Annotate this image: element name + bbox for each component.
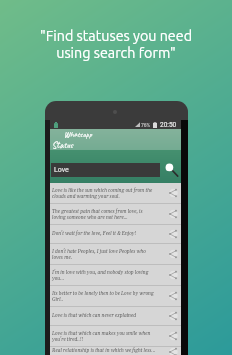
staticText: Whatsapp: [64, 129, 92, 139]
button[interactable]: Share: [168, 229, 178, 239]
button[interactable]: Share: [168, 311, 178, 321]
button[interactable]: I don't hate Peoples, I just love People…: [50, 244, 181, 264]
staticText: I don't hate Peoples, I just love People…: [52, 249, 156, 260]
staticText: I'm in love with you, and nobody stop lo…: [52, 270, 156, 281]
button[interactable]: Share: [168, 331, 178, 341]
staticText: Love is that which can never explained: [52, 313, 156, 319]
staticText: "Find statuses you need using search for…: [40, 28, 192, 61]
button[interactable]: Don't wait for the love, Feel it & Enjoy…: [50, 225, 181, 243]
button[interactable]: Share: [168, 291, 178, 301]
staticText: Love is that which can makes you smile w…: [52, 331, 156, 342]
button[interactable]: The greatest pain that comes from love, …: [50, 204, 181, 224]
button[interactable]: Love is that which can never explained: [50, 307, 181, 325]
staticText: The greatest pain that comes from love, …: [52, 209, 156, 220]
staticText: Status: [52, 139, 73, 150]
staticText: Love: [54, 166, 69, 174]
button[interactable]: Real relationship is that in which we fi…: [50, 347, 181, 355]
button[interactable]: Share: [168, 188, 178, 198]
staticText: Real relationship is that in which we fi…: [52, 348, 156, 354]
staticText: Love is like the sun which coming out fr…: [52, 188, 156, 199]
button[interactable]: I'm in love with you, and nobody stop lo…: [50, 265, 181, 285]
button[interactable]: Love: [51, 163, 160, 177]
button[interactable]: Love is like the sun which coming out fr…: [50, 183, 181, 203]
button[interactable]: Share: [168, 209, 178, 219]
button[interactable]: Its better to be lonely then to be Love …: [50, 286, 181, 306]
button[interactable]: Love is that which can makes you smile w…: [50, 326, 181, 346]
button[interactable]: Search: [163, 162, 179, 178]
staticText: Its better to be lonely then to be Love …: [52, 291, 156, 302]
staticText: 20:50: [160, 121, 177, 129]
button[interactable]: Share: [168, 270, 178, 280]
button[interactable]: Share: [168, 249, 178, 259]
staticText: Don't wait for the love, Feel it & Enjoy…: [52, 231, 156, 237]
button[interactable]: Share: [168, 347, 178, 355]
staticText: 76%: [141, 122, 151, 128]
